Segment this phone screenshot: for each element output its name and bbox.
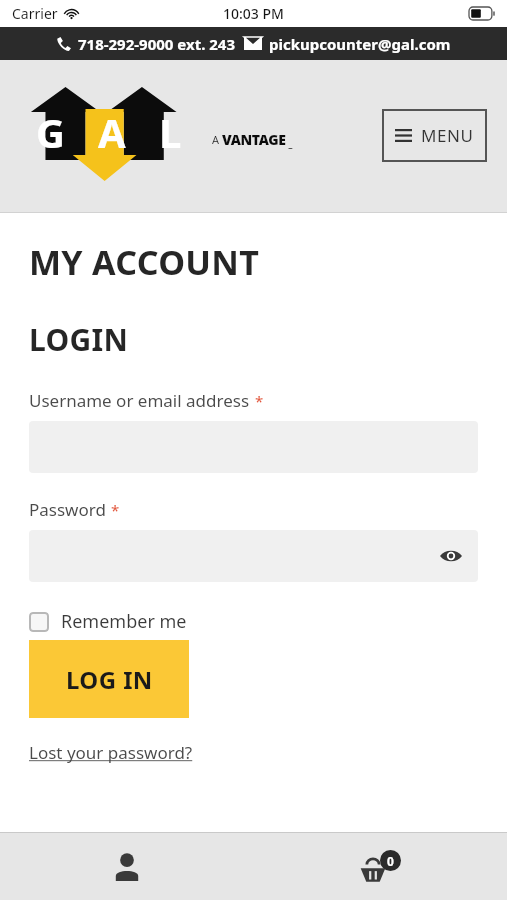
staticText: * bbox=[111, 500, 120, 520]
staticText: L bbox=[159, 105, 182, 159]
staticText: MENU bbox=[421, 124, 474, 147]
staticText: 718-292-9000 ext. 243 bbox=[78, 34, 235, 54]
staticText: pickupcounter@gal.com bbox=[269, 34, 451, 54]
button[interactable]: Remember me bbox=[29, 609, 187, 634]
staticText: MY ACCOUNT bbox=[29, 239, 260, 285]
staticText: LOG IN bbox=[66, 663, 153, 696]
staticText: LOGIN bbox=[29, 319, 129, 360]
button[interactable]: Lost your password? bbox=[29, 741, 193, 764]
staticText: VANTAGE bbox=[222, 130, 286, 149]
button[interactable]: Show password bbox=[436, 541, 466, 571]
staticText: Company bbox=[286, 129, 337, 149]
button[interactable]: 718-292-9000 ext. 243 bbox=[0, 27, 507, 60]
button[interactable]: Show password bbox=[29, 530, 478, 582]
staticText: A bbox=[212, 132, 222, 147]
staticText: 0 bbox=[387, 853, 394, 869]
staticText: Carrier bbox=[12, 4, 58, 23]
button[interactable]: MENU bbox=[382, 109, 487, 162]
staticText: G bbox=[36, 105, 65, 159]
button[interactable]: Cart, 0 items bbox=[253, 833, 507, 900]
button[interactable]: LOG IN bbox=[29, 640, 189, 718]
button[interactable]: GAL home bbox=[30, 82, 212, 182]
staticText: A bbox=[98, 105, 126, 159]
staticText: Password bbox=[29, 498, 106, 521]
staticText: Username or email address bbox=[29, 389, 250, 412]
staticText: * bbox=[255, 391, 264, 411]
staticText: 10:03 PM bbox=[223, 4, 284, 23]
staticText: Remember me bbox=[61, 609, 187, 634]
button[interactable]: My account bbox=[0, 833, 253, 900]
